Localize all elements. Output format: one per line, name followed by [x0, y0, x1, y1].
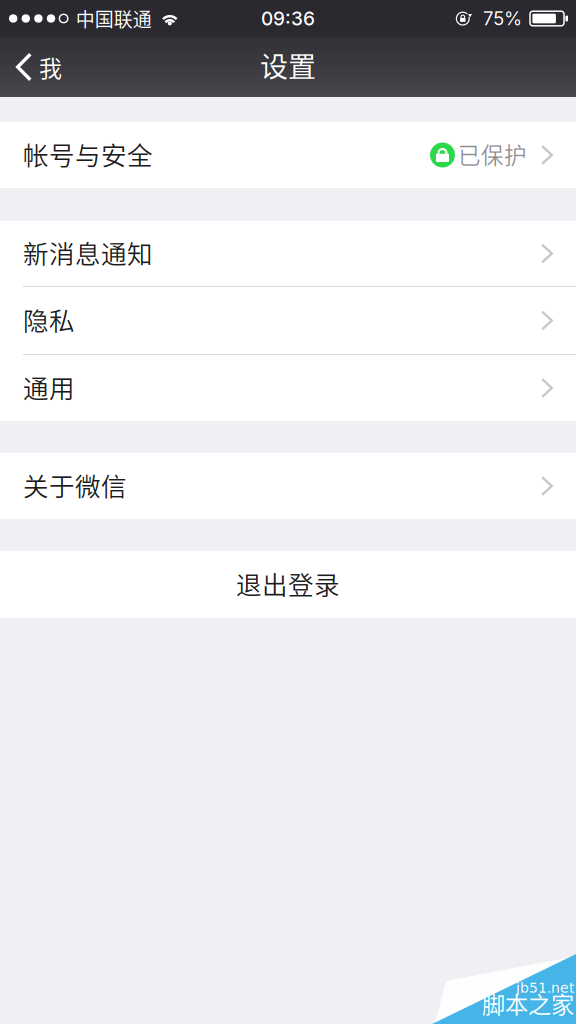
- button[interactable]: 通用: [0, 355, 576, 421]
- button[interactable]: 关于微信: [0, 453, 576, 519]
- staticText: 已保护: [458, 138, 527, 170]
- staticText: 设置: [260, 45, 316, 85]
- staticText: 脚本之家: [482, 986, 574, 1020]
- staticText: 关于微信: [23, 466, 127, 503]
- staticText: 09:36: [261, 7, 315, 30]
- button[interactable]: 帐号与安全: [0, 122, 576, 188]
- staticText: 中国联通: [76, 5, 152, 32]
- button[interactable]: 隐私: [0, 287, 576, 354]
- staticText: jb51.net: [516, 980, 574, 996]
- staticText: 75%: [483, 7, 522, 30]
- staticText: 帐号与安全: [23, 135, 153, 172]
- button[interactable]: 新消息通知: [0, 221, 576, 286]
- staticText: 新消息通知: [23, 234, 153, 271]
- staticText: 通用: [23, 368, 75, 405]
- staticText: 退出登录: [236, 565, 340, 602]
- staticText: 我: [39, 50, 62, 84]
- button[interactable]: 我: [0, 37, 76, 97]
- staticText: 隐私: [23, 301, 75, 338]
- button[interactable]: 退出登录: [0, 551, 576, 618]
